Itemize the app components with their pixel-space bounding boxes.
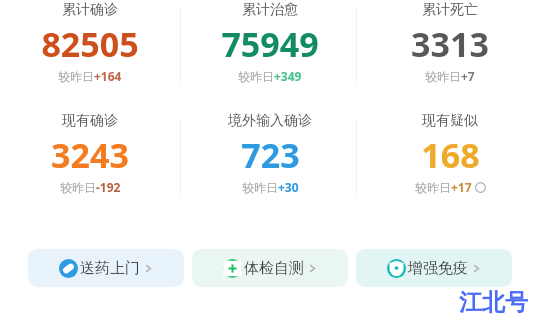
staticText: 送药上门 [80, 259, 140, 278]
other: 体检自测 [223, 259, 242, 278]
staticText: 累计确诊 [62, 1, 118, 19]
staticText: 体检自测 [244, 259, 304, 278]
button[interactable]: 送药上门 [28, 249, 184, 287]
staticText: 累计治愈 [242, 1, 298, 19]
staticText: 3313 [411, 21, 489, 67]
staticText: 较昨日+349 [238, 68, 302, 84]
staticText: 723 [241, 132, 300, 178]
other: 增强免疫 [387, 259, 406, 278]
staticText: 75949 [221, 21, 319, 67]
staticText: 增强免疫 [408, 259, 468, 278]
staticText: 累计死亡 [422, 1, 478, 19]
staticText: 较昨日+164 [58, 68, 122, 84]
staticText: 境外输入确诊 [228, 112, 312, 130]
staticText: 较昨日-192 [60, 179, 121, 195]
staticText: 现有确诊 [62, 112, 118, 130]
other: 送药上门 [59, 259, 78, 278]
staticText: 江北号 [459, 288, 528, 317]
staticText: 较昨日+17 [415, 179, 472, 195]
button[interactable]: 增强免疫 [356, 249, 512, 287]
staticText: 168 [421, 132, 480, 178]
staticText: 3243 [51, 132, 129, 178]
button[interactable]: 体检自测 [192, 249, 348, 287]
staticText: 较昨日+30 [242, 179, 299, 195]
staticText: 现有疑似 [422, 112, 478, 130]
staticText: 较昨日+7 [425, 68, 475, 84]
staticText: 82505 [41, 21, 139, 67]
